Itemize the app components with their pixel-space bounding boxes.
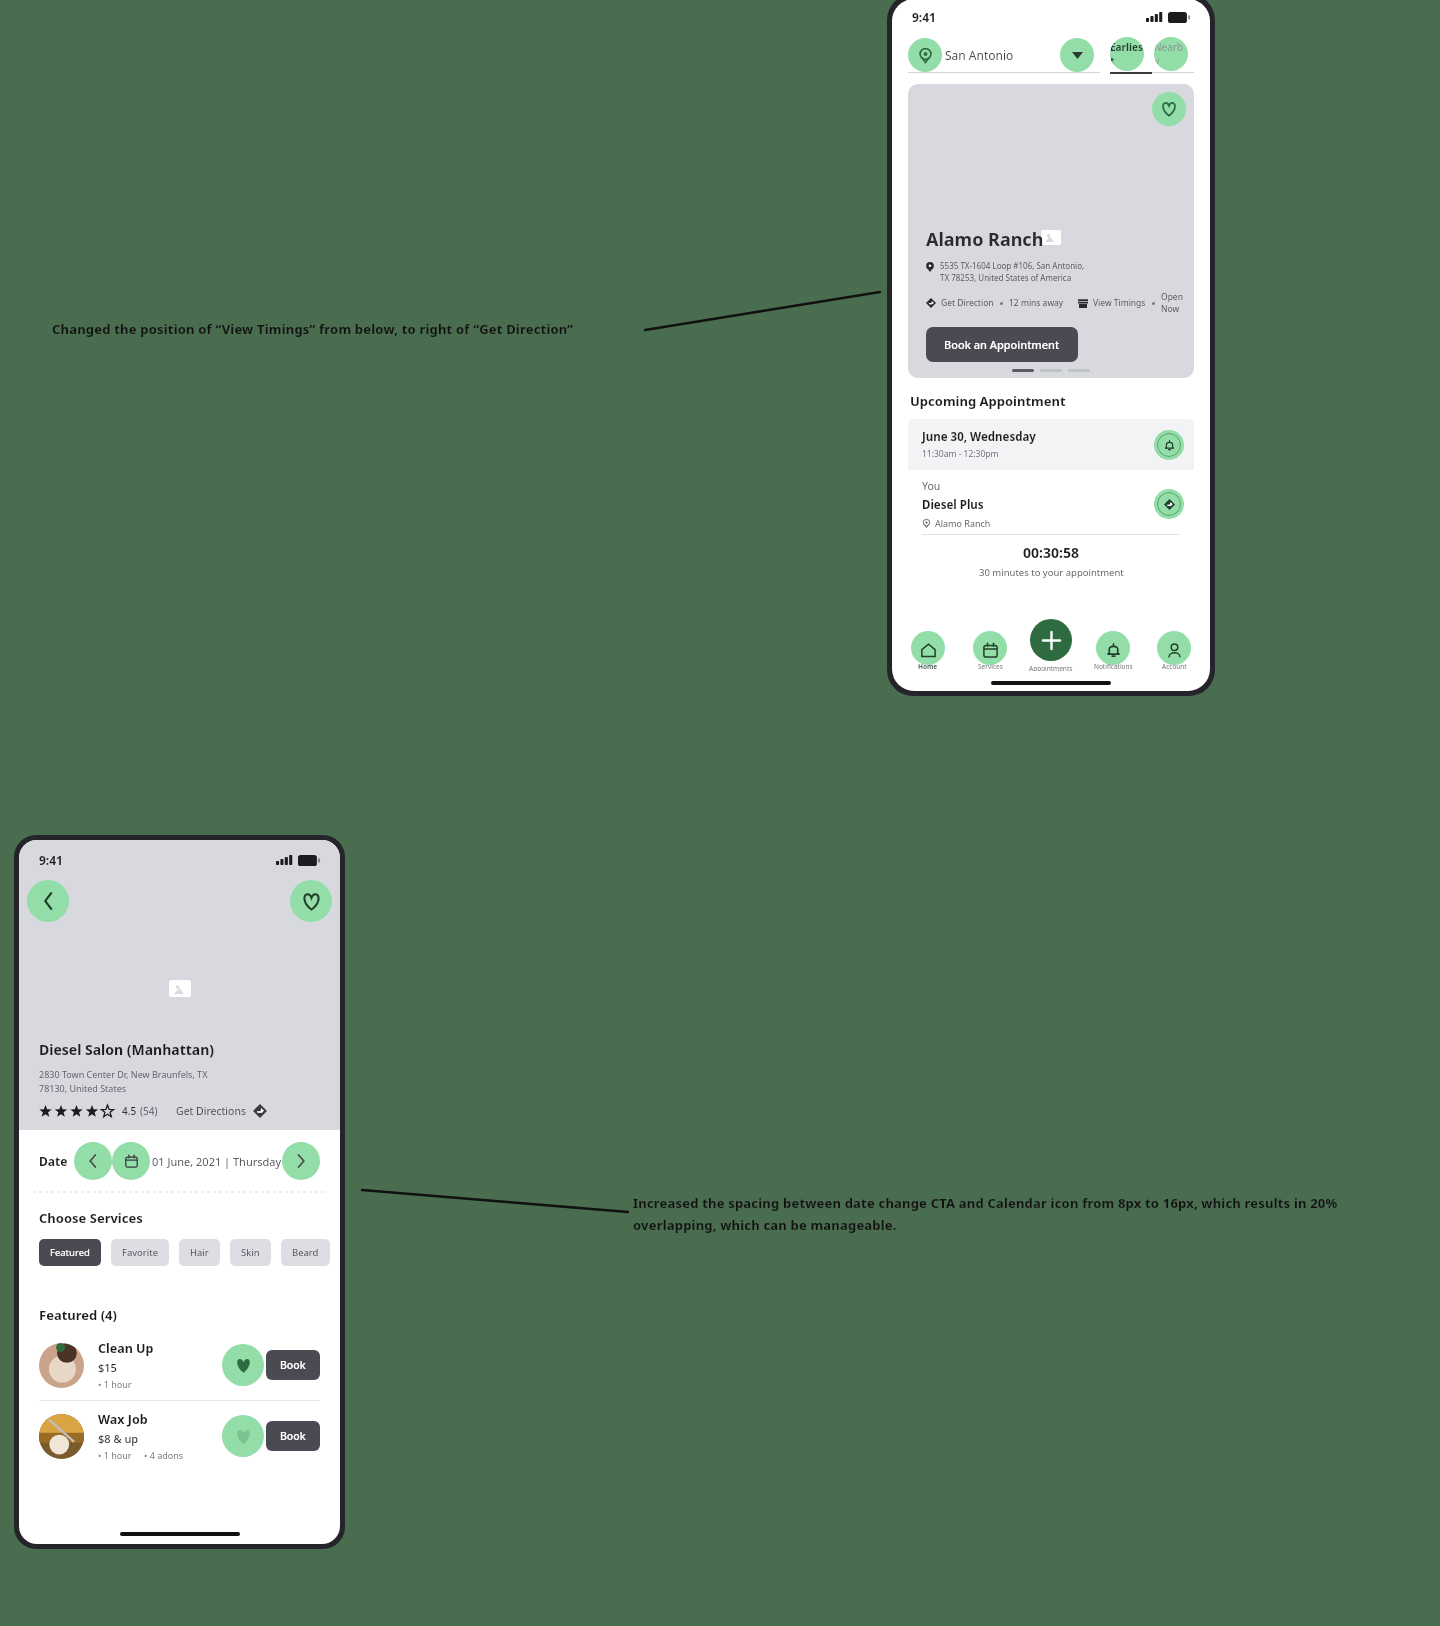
button[interactable]: Services [966, 637, 1014, 671]
staticText: Services [978, 662, 1003, 671]
staticText: 5535 TX-1604 Loop #106, San Antonio, TX … [940, 260, 1085, 284]
button[interactable]: Reminder [1154, 430, 1184, 460]
staticText: Alamo Ranch [935, 517, 991, 529]
staticText: 11:30am - 12:30pm [922, 448, 999, 460]
button[interactable]: Favourite [290, 880, 332, 922]
button[interactable]: Next day [282, 1142, 320, 1180]
staticText: Featured (4) [39, 1306, 117, 1324]
staticText: $15 [98, 1360, 117, 1375]
staticText: Increased the spacing between date chang… [633, 1194, 1363, 1234]
staticText: Appointments [1029, 664, 1073, 671]
staticText: Account [1162, 662, 1187, 671]
staticText: Favorite [122, 1246, 158, 1259]
staticText: 9:41 [39, 852, 63, 868]
button[interactable]: Favourite [1152, 92, 1186, 126]
staticText: Beard [292, 1246, 319, 1259]
button[interactable]: Account [1150, 637, 1198, 671]
button[interactable]: Previous day [74, 1142, 112, 1180]
staticText: Notifications [1094, 662, 1133, 671]
staticText: View Timings [1093, 297, 1146, 309]
staticText: Home [918, 662, 938, 671]
button[interactable]: Get Directions [176, 1104, 267, 1118]
button[interactable]: Favorite [111, 1239, 169, 1266]
staticText: 00:30:58 [1023, 543, 1079, 562]
staticText: San Antonio [945, 47, 1014, 63]
button[interactable]: Book [266, 1350, 320, 1380]
staticText: Featured [50, 1246, 90, 1259]
button[interactable]: Clean Up [39, 1340, 320, 1390]
button[interactable]: Book an Appointment [926, 327, 1078, 362]
staticText: Diesel Plus [922, 497, 984, 513]
staticText: (54) [140, 1104, 158, 1118]
button[interactable]: Home [904, 637, 952, 671]
staticText: Upcoming Appointment [910, 392, 1066, 410]
staticText: Book [280, 1358, 306, 1372]
staticText: $8 & up [98, 1431, 139, 1446]
staticText: You [922, 479, 941, 493]
staticText: • 4 adons [144, 1449, 184, 1461]
staticText: Hair [190, 1246, 209, 1259]
staticText: Get Direction [941, 297, 994, 309]
button[interactable]: Nearby [1154, 37, 1188, 71]
staticText: 4.5 [122, 1104, 137, 1118]
staticText: Book [280, 1429, 306, 1443]
button[interactable]: Get Direction [941, 297, 994, 309]
staticText: Skin [241, 1246, 260, 1259]
staticText: 12 mins away [1009, 297, 1064, 309]
button[interactable]: View Timings [1093, 297, 1146, 309]
staticText: 2830 Town Center Dr, New Braunfels, TX 7… [39, 1068, 208, 1095]
staticText: 9:41 [912, 9, 936, 25]
button[interactable]: New appointment [1030, 619, 1072, 661]
staticText: Earliest [1110, 40, 1144, 68]
button[interactable]: Directions [1154, 489, 1184, 519]
staticText: Open Now [1161, 291, 1194, 315]
button[interactable]: 01 June, 2021 | Thursday [112, 1142, 282, 1180]
staticText: Diesel Salon (Manhattan) [39, 1040, 215, 1059]
staticText: • 1 hour [98, 1449, 132, 1461]
staticText: Get Directions [176, 1104, 246, 1118]
button[interactable]: Favourite Clean Up [222, 1344, 264, 1386]
staticText: 30 minutes to your appointment [979, 566, 1124, 579]
other: Change city [1060, 38, 1094, 72]
staticText: Wax Job [98, 1411, 148, 1428]
button[interactable]: Wax Job [39, 1411, 320, 1461]
button[interactable]: Back [27, 880, 69, 922]
staticText: Book an Appointment [944, 337, 1060, 352]
button[interactable]: Favourite Wax Job [222, 1415, 264, 1457]
staticText: Alamo Ranch [926, 227, 1044, 252]
staticText: Clean Up [98, 1340, 154, 1357]
button[interactable]: Featured [39, 1239, 101, 1266]
button[interactable]: Hair [179, 1239, 220, 1266]
staticText: June 30, Wednesday [922, 429, 1036, 445]
button[interactable]: Skin [230, 1239, 271, 1266]
staticText: Changed the position of “View Timings” f… [52, 320, 574, 338]
button[interactable]: Notifications [1089, 637, 1137, 671]
button[interactable]: Earliest [1110, 37, 1144, 71]
staticText: 01 June, 2021 | Thursday [152, 1154, 282, 1169]
staticText: Choose Services [39, 1209, 143, 1227]
staticText: Date [39, 1153, 68, 1169]
button[interactable]: San Antonio [908, 38, 1100, 72]
button[interactable]: Book [266, 1421, 320, 1451]
button[interactable]: Beard [281, 1239, 330, 1266]
staticText: • 1 hour [98, 1378, 132, 1390]
staticText: Nearby [1154, 40, 1188, 68]
